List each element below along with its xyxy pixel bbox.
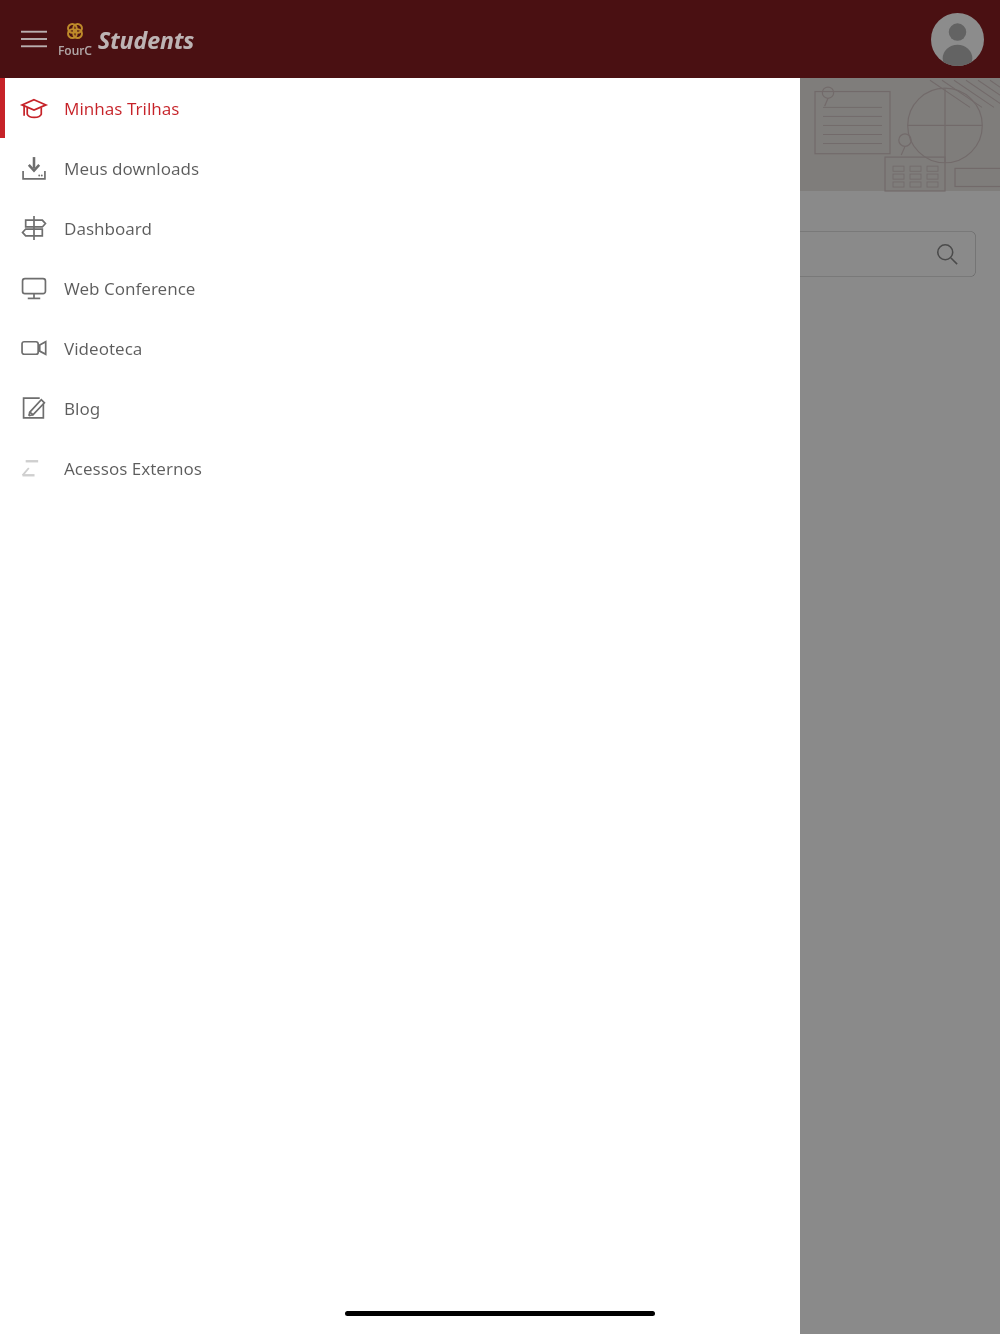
button[interactable]: FourC [58, 21, 195, 58]
button[interactable]: Meus downloads [0, 138, 800, 198]
staticText: Dashboard [64, 217, 153, 240]
button[interactable]: Open navigation menu [12, 17, 56, 61]
button[interactable]: Web Conference [0, 258, 800, 318]
button[interactable]: Minhas Trilhas [0, 78, 800, 138]
staticText: Minhas Trilhas [64, 97, 180, 120]
staticText: Students [98, 24, 195, 55]
button[interactable]: Acessos Externos [0, 438, 800, 498]
button[interactable]: Dashboard [0, 198, 800, 258]
button[interactable]: Videoteca [0, 318, 800, 378]
staticText: Acessos Externos [64, 457, 202, 480]
button[interactable]: Pesquisar trilhas [24, 231, 976, 277]
staticText: Videoteca [64, 337, 143, 360]
staticText: Web Conference [64, 277, 196, 300]
staticText: FourC [58, 42, 92, 58]
staticText: Blog [64, 397, 101, 420]
button[interactable]: Blog [0, 378, 800, 438]
button[interactable]: Profile [931, 13, 984, 66]
button[interactable] [0, 78, 1000, 1334]
staticText: Meus downloads [64, 157, 200, 180]
